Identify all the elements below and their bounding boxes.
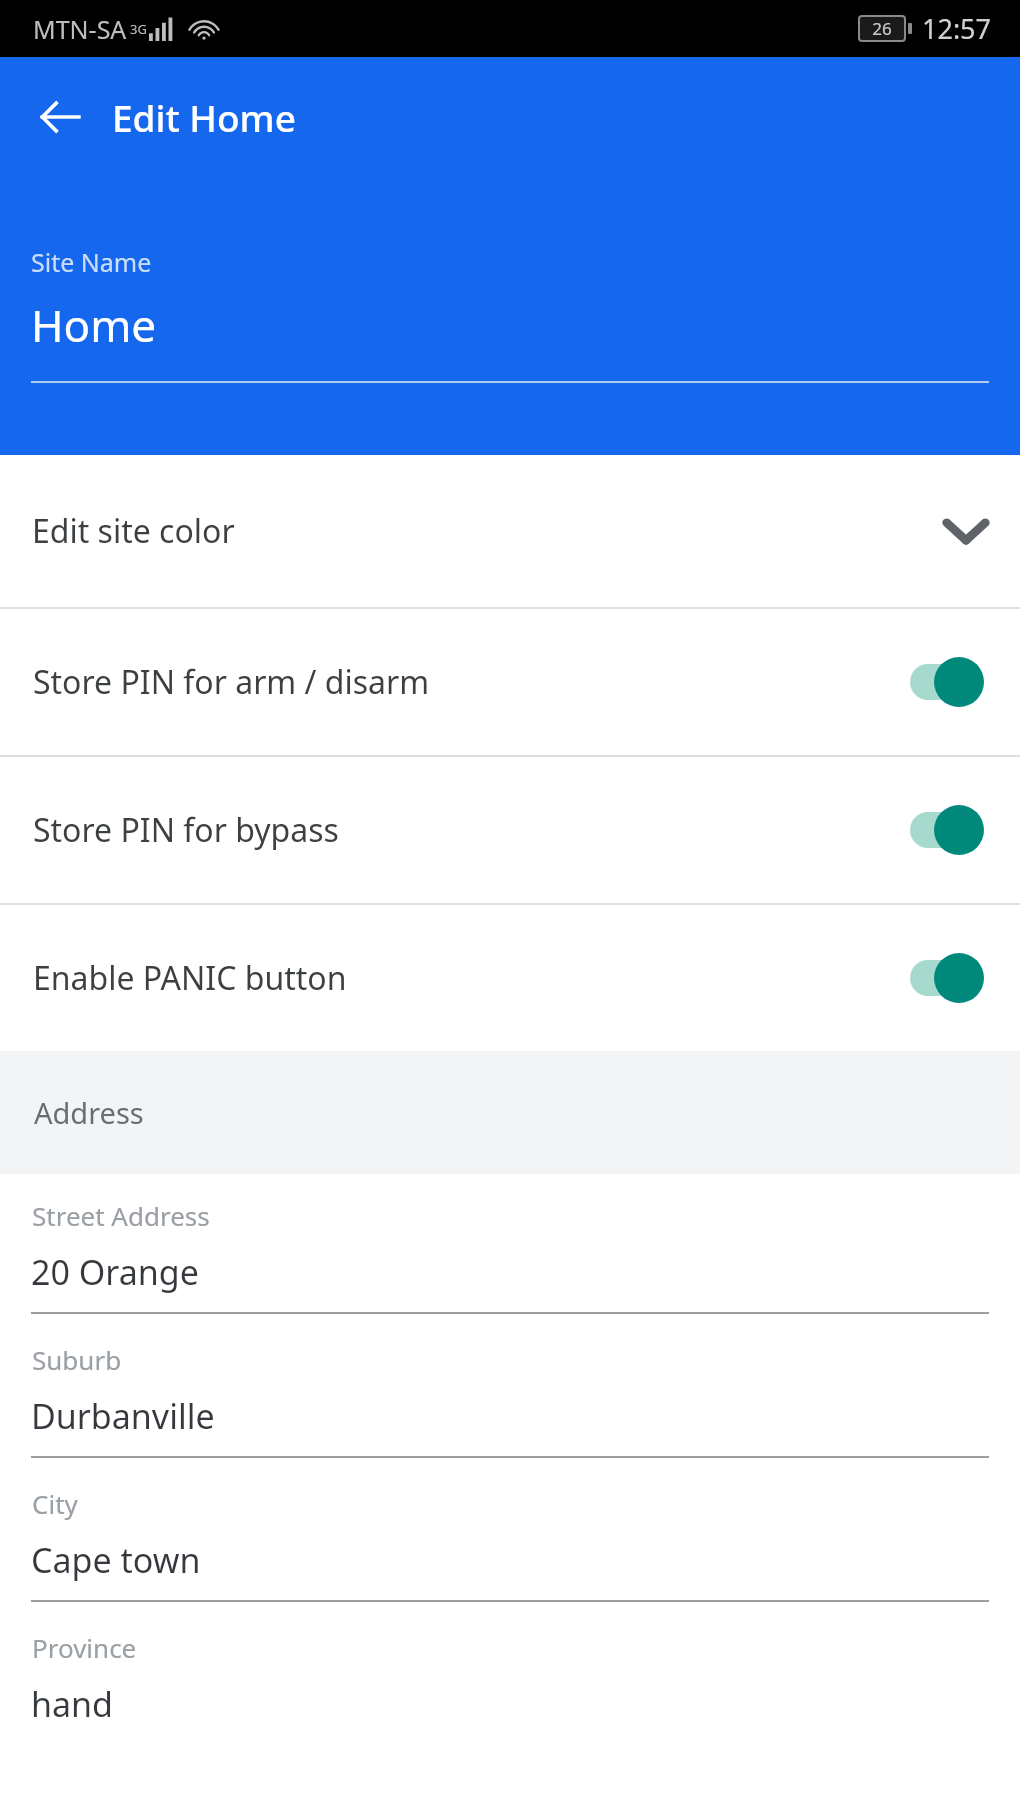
staticText: Address — [34, 1093, 144, 1132]
button[interactable]: Back — [22, 79, 98, 155]
staticText: Edit site color — [32, 509, 235, 553]
staticText: Edit Home — [112, 92, 296, 142]
staticText: MTN-SA — [33, 12, 127, 46]
button[interactable]: Suburb — [0, 1318, 1020, 1462]
button[interactable]: Store PIN for arm / disarm — [0, 609, 1020, 755]
staticText: 26 — [872, 17, 892, 40]
staticText: Cape town — [31, 1537, 201, 1583]
staticText: hand — [31, 1681, 114, 1727]
button[interactable]: Enable PANIC button — [0, 905, 1020, 1051]
staticText: 12:57 — [922, 10, 992, 47]
button[interactable]: Province — [0, 1606, 1020, 1750]
staticText: Store PIN for bypass — [33, 808, 339, 852]
staticText: 20 Orange — [31, 1249, 199, 1295]
staticText: City — [32, 1486, 78, 1521]
staticText: 3G — [130, 20, 147, 38]
staticText: Province — [32, 1630, 137, 1665]
staticText: Suburb — [32, 1342, 122, 1377]
button[interactable]: Store PIN for bypass — [0, 757, 1020, 903]
staticText: Home — [31, 295, 157, 355]
staticText: Durbanville — [31, 1393, 215, 1439]
button[interactable]: Edit site color — [0, 455, 1020, 607]
staticText: Street Address — [32, 1198, 210, 1233]
staticText: Enable PANIC button — [33, 956, 347, 1000]
staticText: Site Name — [31, 245, 152, 279]
button[interactable]: City — [0, 1462, 1020, 1606]
staticText: Store PIN for arm / disarm — [33, 660, 430, 704]
button[interactable]: Street Address — [0, 1174, 1020, 1318]
